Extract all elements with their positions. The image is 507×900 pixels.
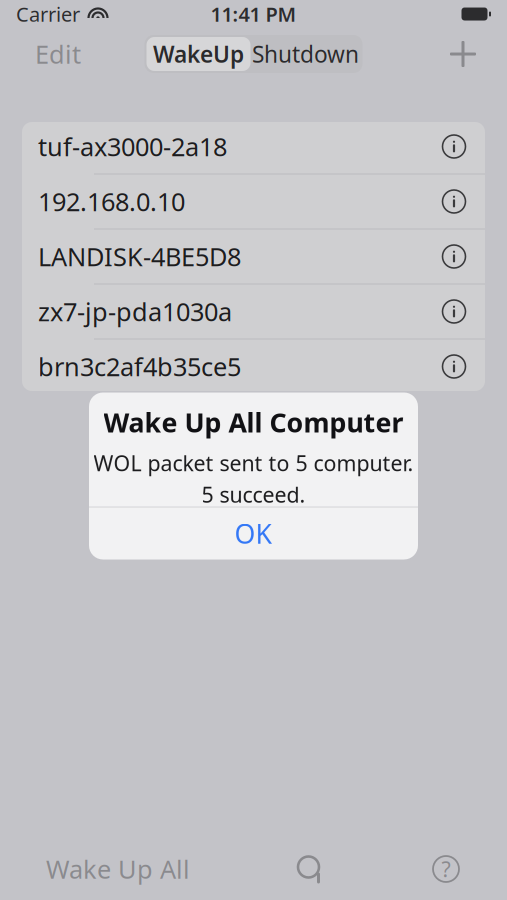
button[interactable]: Wake Up All <box>46 844 190 894</box>
staticText: WOL packet sent to 5 computer. <box>93 449 413 477</box>
button[interactable]: LANDISK-4BE5D8 <box>22 229 485 283</box>
staticText: OK <box>234 516 272 551</box>
staticText: 5 succeed. <box>201 480 305 508</box>
button[interactable]: Shutdown <box>250 37 360 71</box>
staticText: ? <box>441 855 450 883</box>
staticText: brn3c2af4b35ce5 <box>38 350 241 383</box>
staticText: LANDISK-4BE5D8 <box>38 240 241 273</box>
button[interactable]: 192.168.0.10 <box>22 174 485 228</box>
button[interactable]: Edit <box>27 32 89 76</box>
button[interactable]: brn3c2af4b35ce5 <box>22 339 485 393</box>
staticText: tuf-ax3000-2a18 <box>38 130 227 163</box>
staticText: 11:41 PM <box>210 1 296 27</box>
staticText: Shutdown <box>252 39 359 69</box>
button[interactable]: Add computer <box>446 32 480 76</box>
button[interactable]: OK <box>89 507 418 559</box>
button[interactable]: zx7-jp-pda1030a <box>22 284 485 338</box>
button[interactable]: WakeUp <box>146 37 250 71</box>
button[interactable]: tuf-ax3000-2a18 <box>22 119 485 173</box>
staticText: Wake Up All <box>46 852 190 886</box>
staticText: Edit <box>35 37 81 71</box>
staticText: zx7-jp-pda1030a <box>38 295 232 328</box>
staticText: 192.168.0.10 <box>38 185 185 218</box>
staticText: Wake Up All Computer <box>103 404 403 440</box>
button[interactable]: Search <box>294 844 326 894</box>
button[interactable]: Help <box>431 844 461 894</box>
staticText: WakeUp <box>153 39 244 69</box>
staticText: Carrier <box>16 1 80 27</box>
